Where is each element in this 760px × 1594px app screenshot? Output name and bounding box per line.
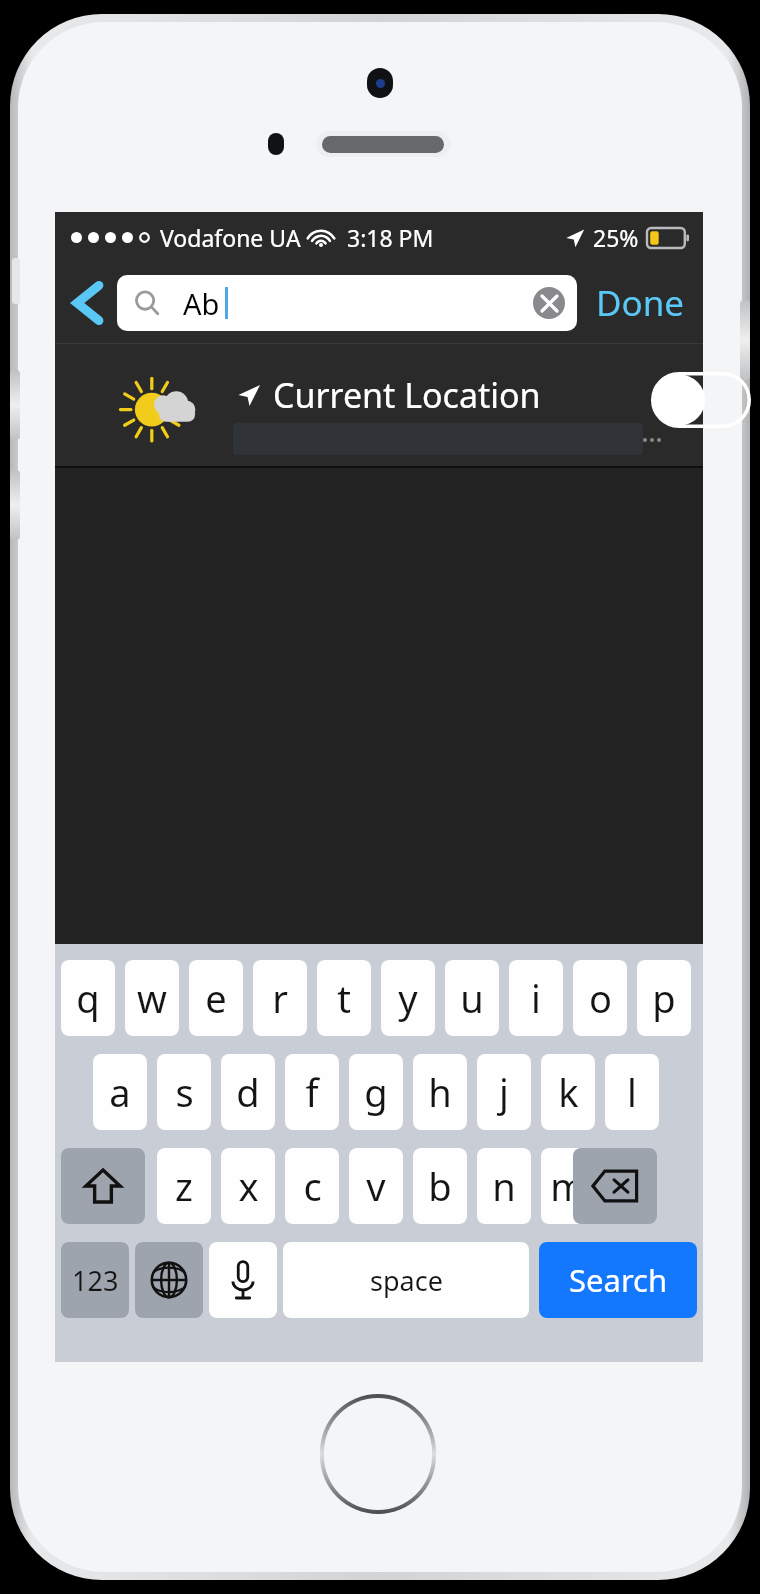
staticText: p — [652, 972, 676, 1024]
staticText: y — [398, 972, 418, 1024]
staticText: s — [175, 1066, 194, 1118]
staticText: Current Location — [273, 372, 541, 418]
button[interactable]: z — [157, 1148, 211, 1224]
staticText: r — [272, 972, 288, 1024]
button[interactable]: k — [541, 1054, 595, 1130]
button[interactable]: Home — [320, 1394, 436, 1514]
staticText: Vodafone UA — [160, 222, 301, 253]
button[interactable]: a — [93, 1054, 147, 1130]
staticText: h — [428, 1066, 452, 1118]
staticText: n — [492, 1160, 516, 1212]
staticText: Ab — [183, 284, 220, 323]
staticText: d — [236, 1066, 260, 1118]
button[interactable]: Clear — [533, 287, 565, 319]
staticText: w — [137, 972, 167, 1024]
button[interactable]: j — [477, 1054, 531, 1130]
staticText: b — [428, 1160, 452, 1212]
staticText: g — [364, 1066, 388, 1118]
button[interactable]: Back — [59, 262, 117, 344]
button[interactable]: g — [349, 1054, 403, 1130]
button[interactable]: 123 — [61, 1242, 129, 1318]
button[interactable]: e — [189, 960, 243, 1036]
button[interactable]: c — [285, 1148, 339, 1224]
button[interactable]: Ab — [117, 275, 577, 331]
button[interactable]: space — [283, 1242, 529, 1318]
button[interactable]: x — [221, 1148, 275, 1224]
button[interactable]: Current location toggle — [651, 372, 751, 428]
staticText: Search — [569, 1259, 668, 1301]
button[interactable]: p — [637, 960, 691, 1036]
staticText: c — [303, 1160, 322, 1212]
staticText: u — [460, 972, 484, 1024]
button[interactable]: o — [573, 960, 627, 1036]
button[interactable]: f — [285, 1054, 339, 1130]
button[interactable]: y — [381, 960, 435, 1036]
button[interactable]: d — [221, 1054, 275, 1130]
button[interactable]: t — [317, 960, 371, 1036]
button[interactable]: Dictate — [209, 1242, 277, 1318]
button[interactable]: Search — [539, 1242, 697, 1318]
staticText: f — [305, 1066, 319, 1118]
button[interactable]: h — [413, 1054, 467, 1130]
button[interactable]: m — [541, 1148, 595, 1224]
staticText: l — [627, 1066, 637, 1118]
button[interactable]: i — [509, 960, 563, 1036]
button[interactable]: Shift — [61, 1148, 145, 1224]
staticText: q — [76, 972, 100, 1024]
staticText: 3:18 PM — [347, 222, 434, 253]
staticText: t — [337, 972, 351, 1024]
staticText: i — [531, 972, 541, 1024]
button[interactable]: b — [413, 1148, 467, 1224]
staticText: Done — [596, 279, 685, 327]
button[interactable]: q — [61, 960, 115, 1036]
staticText: space — [370, 1262, 443, 1299]
button[interactable]: u — [445, 960, 499, 1036]
button[interactable]: Done — [586, 271, 695, 335]
staticText: j — [499, 1066, 509, 1118]
staticText: o — [589, 972, 612, 1024]
button[interactable]: r — [253, 960, 307, 1036]
staticText: m — [550, 1160, 586, 1212]
staticText: e — [205, 972, 227, 1024]
staticText: 123 — [72, 1262, 119, 1299]
button[interactable]: w — [125, 960, 179, 1036]
staticText: k — [558, 1066, 579, 1118]
button[interactable]: Backspace — [573, 1148, 657, 1224]
button[interactable]: s — [157, 1054, 211, 1130]
button[interactable]: Change keyboard — [135, 1242, 203, 1318]
staticText: 25% — [593, 222, 639, 253]
button[interactable]: v — [349, 1148, 403, 1224]
staticText: z — [175, 1160, 193, 1212]
staticText: v — [366, 1160, 386, 1212]
button[interactable]: n — [477, 1148, 531, 1224]
button[interactable]: l — [605, 1054, 659, 1130]
staticText: a — [109, 1066, 131, 1118]
staticText: x — [238, 1160, 259, 1212]
